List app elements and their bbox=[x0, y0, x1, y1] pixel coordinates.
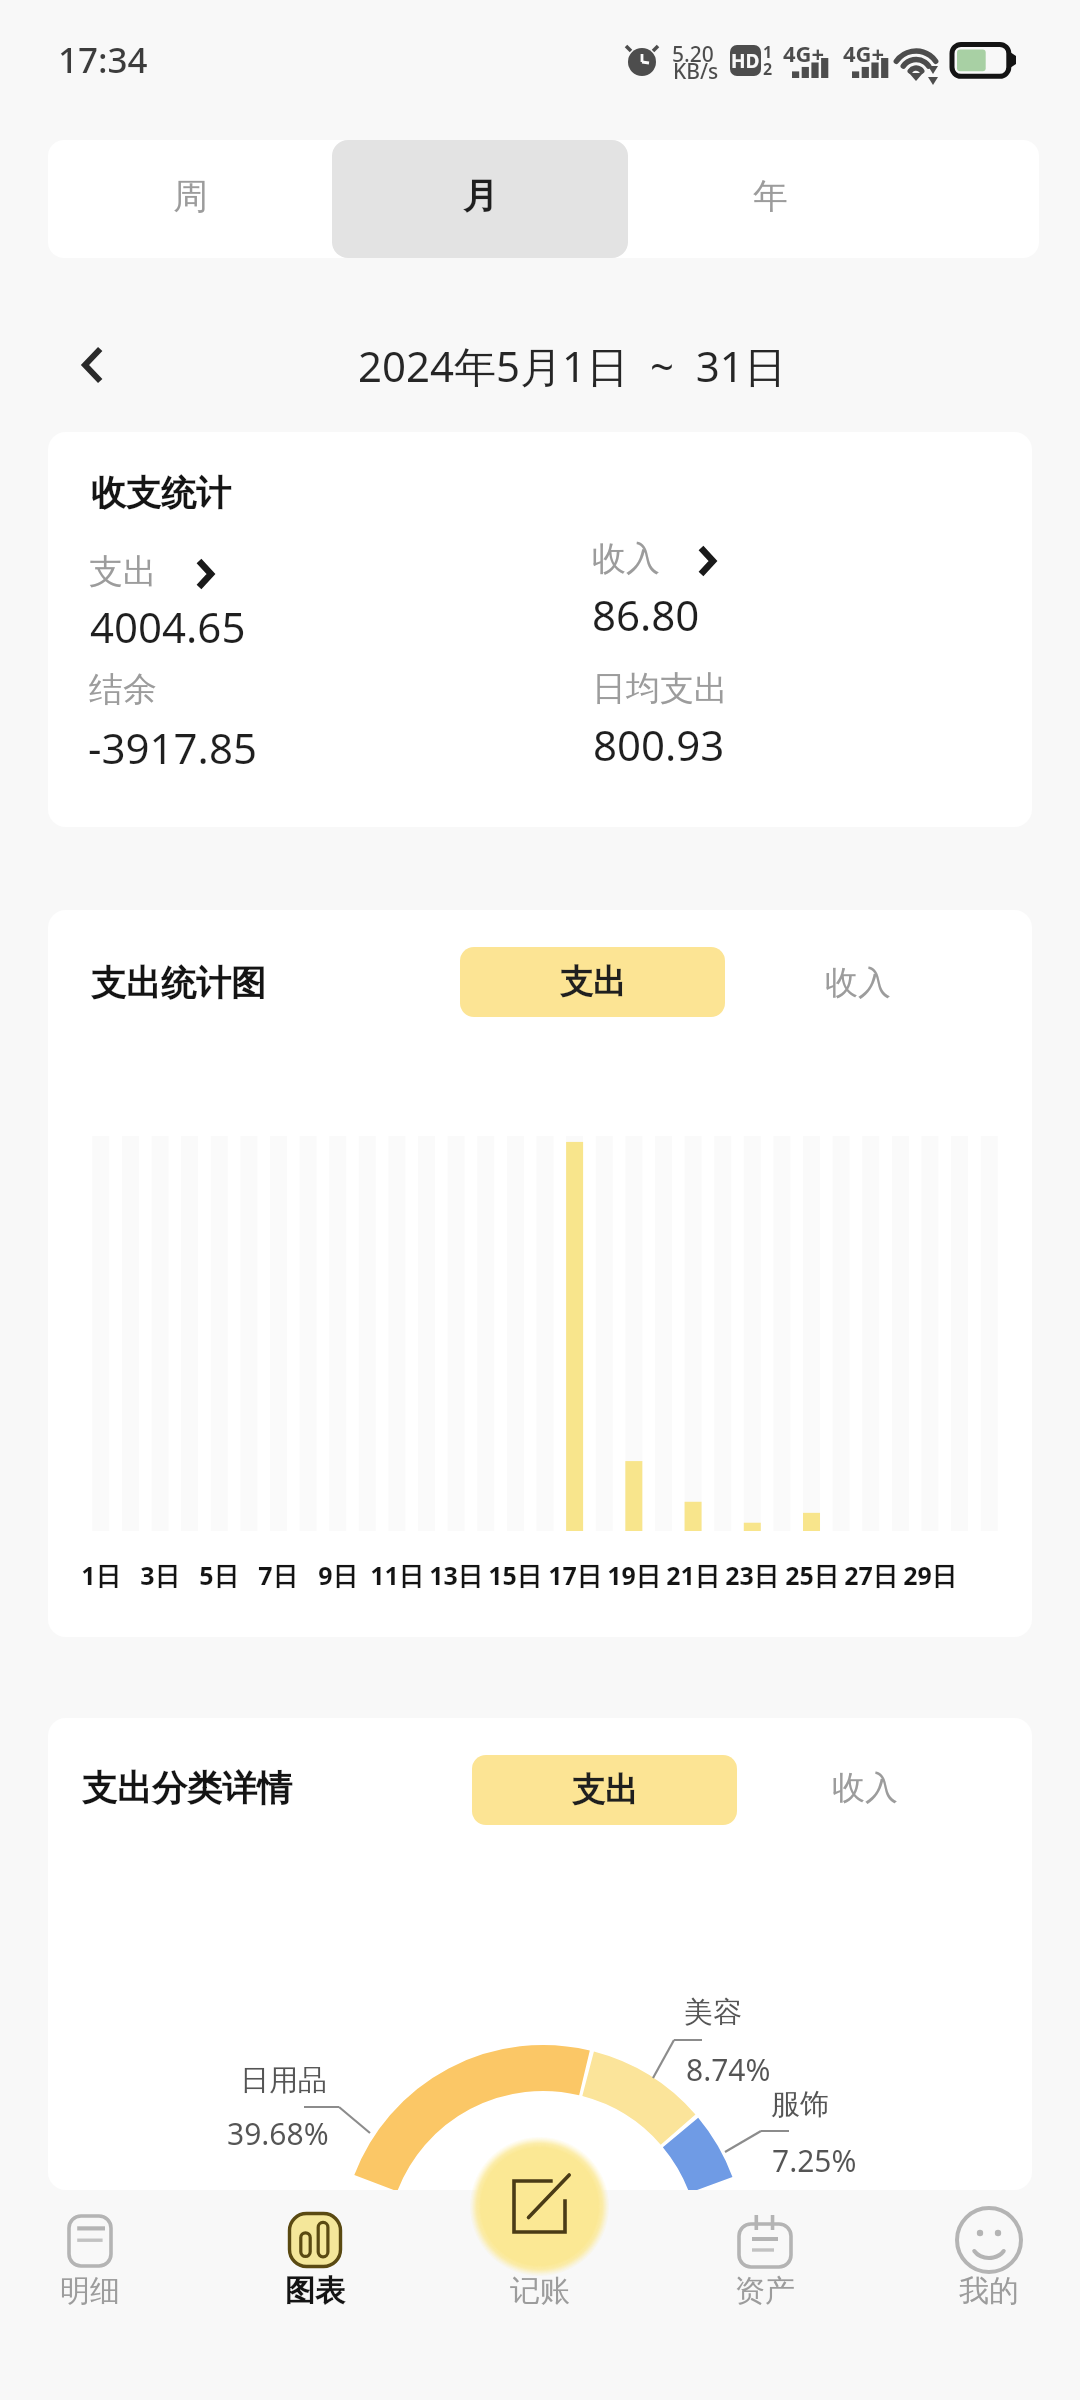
staticText: 7.25% bbox=[772, 2140, 857, 2181]
staticText: 4G+ bbox=[843, 38, 885, 68]
staticText: 15日 bbox=[488, 1558, 542, 1592]
staticText: 2 bbox=[763, 58, 773, 80]
staticText: 支出统计图 bbox=[91, 961, 266, 1005]
staticText: 21日 bbox=[666, 1558, 720, 1592]
staticText: 5.20 bbox=[672, 40, 714, 69]
staticText: 日均支出 bbox=[592, 667, 728, 710]
staticText: 9日 bbox=[318, 1558, 358, 1592]
staticText: 17日 bbox=[548, 1558, 602, 1592]
staticText: 4004.65 bbox=[90, 598, 246, 655]
staticText: 收入 bbox=[825, 962, 891, 1004]
staticText: 收支统计 bbox=[91, 471, 231, 515]
button[interactable]: Add record bbox=[477, 2144, 602, 2269]
staticText: 年 bbox=[753, 174, 788, 218]
staticText: 800.93 bbox=[593, 716, 725, 773]
button[interactable]: 明细 bbox=[0, 2190, 190, 2320]
staticText: 1 bbox=[763, 41, 773, 63]
staticText: 25日 bbox=[785, 1558, 839, 1592]
staticText: 86.80 bbox=[592, 586, 700, 643]
staticText: 支出 bbox=[572, 1769, 638, 1811]
staticText: 支出 bbox=[89, 550, 157, 593]
button[interactable]: 周 bbox=[48, 140, 332, 258]
button[interactable]: 资产 bbox=[665, 2190, 865, 2320]
staticText: 日用品 bbox=[240, 2062, 327, 2099]
staticText: 支出 bbox=[560, 961, 626, 1003]
staticText: 5日 bbox=[199, 1558, 239, 1592]
button[interactable]: 收入 bbox=[825, 962, 891, 1004]
staticText: 支出分类详情 bbox=[82, 1766, 292, 1810]
staticText: 2024年5月1日 ~ 31日 bbox=[358, 337, 786, 394]
button[interactable]: 图表 bbox=[215, 2190, 415, 2320]
staticText: 记账 bbox=[510, 2272, 570, 2310]
staticText: 收入 bbox=[592, 537, 660, 580]
staticText: 3日 bbox=[140, 1558, 180, 1592]
staticText: 图表 bbox=[285, 2272, 345, 2310]
staticText: 39.68% bbox=[227, 2113, 329, 2154]
staticText: 收入 bbox=[832, 1767, 898, 1809]
staticText: 27日 bbox=[844, 1558, 898, 1592]
button[interactable]: 收入 bbox=[832, 1767, 898, 1809]
staticText: 结余 bbox=[89, 668, 157, 711]
staticText: 29日 bbox=[903, 1558, 957, 1592]
staticText: 13日 bbox=[429, 1558, 483, 1592]
staticText: 服饰 bbox=[771, 2086, 829, 2123]
staticText: 11日 bbox=[370, 1558, 424, 1592]
staticText: 4G+ bbox=[783, 38, 825, 68]
staticText: 7日 bbox=[258, 1558, 298, 1592]
button[interactable]: Previous period bbox=[48, 320, 138, 410]
staticText: 17:34 bbox=[58, 36, 148, 84]
staticText: 8.74% bbox=[686, 2049, 771, 2090]
button[interactable]: 支出 bbox=[472, 1755, 737, 1825]
staticText: 周 bbox=[173, 174, 208, 218]
staticText: 资产 bbox=[735, 2272, 795, 2310]
staticText: KB/s bbox=[673, 57, 719, 86]
button[interactable]: 年 bbox=[628, 140, 912, 258]
staticText: 1日 bbox=[81, 1558, 121, 1592]
staticText: 19日 bbox=[607, 1558, 661, 1592]
staticText: 明细 bbox=[60, 2272, 120, 2310]
staticText: -3917.85 bbox=[88, 719, 257, 776]
staticText: 美容 bbox=[684, 1994, 742, 2031]
staticText: 月 bbox=[463, 174, 498, 218]
staticText: 我的 bbox=[959, 2272, 1019, 2310]
button[interactable]: 我的 bbox=[889, 2190, 1080, 2320]
button[interactable]: 支出 bbox=[460, 947, 725, 1017]
staticText: 23日 bbox=[725, 1558, 779, 1592]
button[interactable]: 月 bbox=[332, 140, 628, 258]
staticText: HD bbox=[731, 48, 760, 74]
